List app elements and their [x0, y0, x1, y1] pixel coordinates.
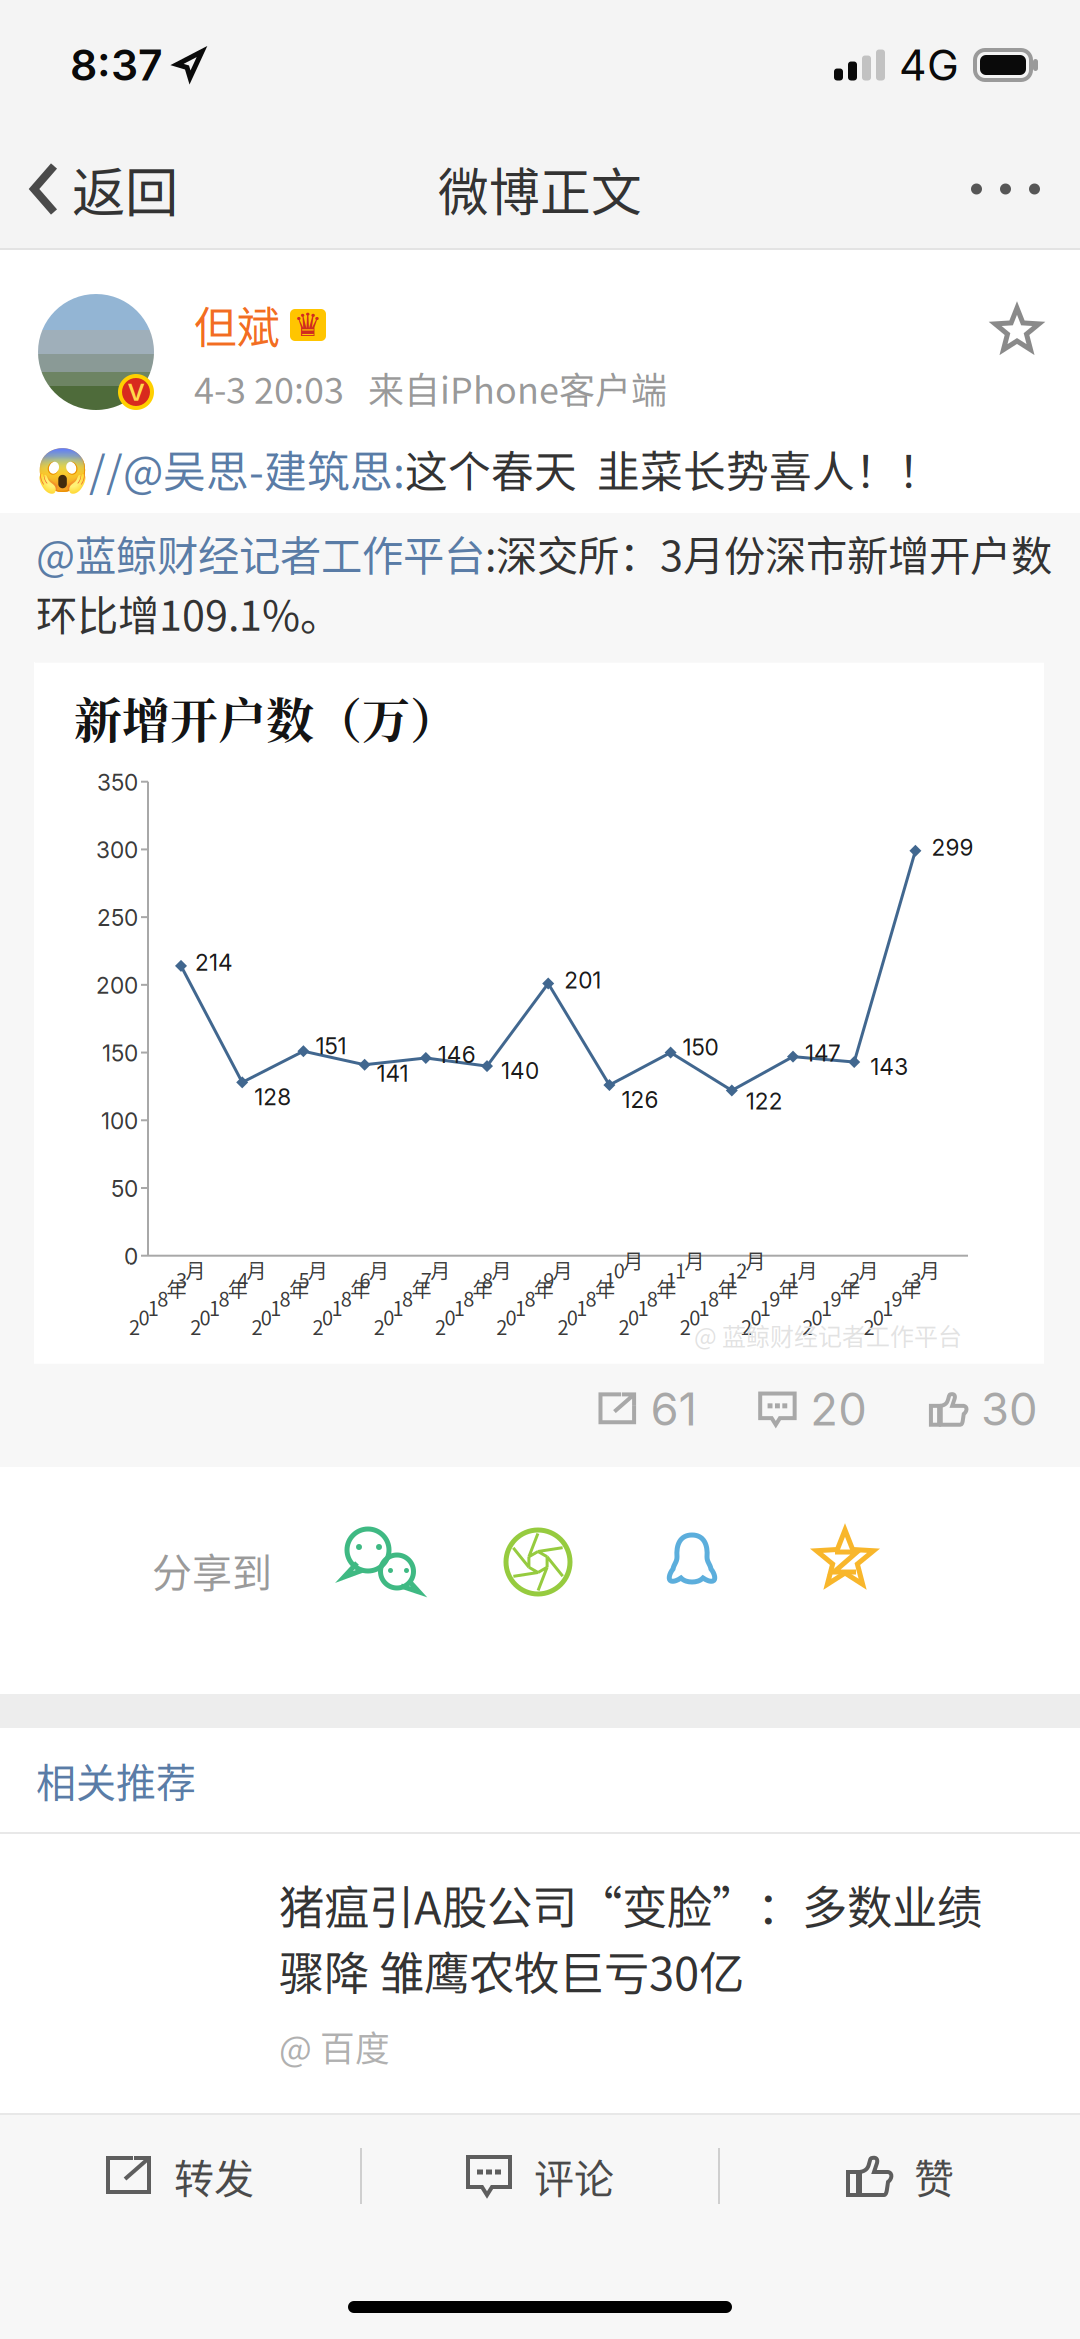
staticText: 4-3 20:03 来自iPhone客户端 — [194, 362, 667, 414]
staticText: 月 — [308, 1255, 328, 1284]
staticText: 2 — [863, 1312, 874, 1341]
staticText: 9 — [543, 1265, 554, 1294]
staticText: 1 — [637, 1293, 648, 1322]
button[interactable]: 返回 — [0, 130, 202, 248]
staticText: 2 — [849, 1265, 860, 1294]
button[interactable]: More — [941, 130, 1080, 248]
staticText: 8 — [341, 1283, 352, 1312]
staticText: 返回 — [72, 150, 178, 228]
staticText: 299 — [931, 834, 973, 861]
staticText: 0 — [567, 1302, 578, 1331]
staticText: 1 — [788, 1265, 799, 1294]
staticText: 新增开户数（万） — [74, 683, 458, 752]
staticText: 151 — [315, 1032, 346, 1060]
staticText: 0 — [506, 1302, 517, 1331]
staticText: 141 — [377, 1060, 409, 1087]
staticText: 2 — [129, 1312, 140, 1341]
staticText: 1 — [882, 1293, 893, 1322]
staticText: 4 — [237, 1265, 248, 1294]
staticText: 年 — [473, 1274, 493, 1303]
staticText: 评论 — [534, 2147, 614, 2205]
staticText: 0 — [614, 1255, 625, 1284]
staticText: 140 — [501, 1057, 539, 1084]
staticText: 214 — [195, 949, 233, 976]
staticText: 1 — [699, 1293, 710, 1322]
staticText: 147 — [805, 1040, 841, 1067]
staticText: 2 — [619, 1312, 630, 1341]
staticText: 月 — [859, 1255, 879, 1284]
button[interactable]: 30 — [875, 1370, 1046, 1449]
button[interactable]: Moments — [492, 1516, 584, 1608]
button[interactable]: 评论 — [362, 2116, 718, 2236]
staticText: 0 — [383, 1302, 394, 1331]
staticText: 年 — [289, 1274, 309, 1303]
staticText: 4G — [899, 39, 959, 91]
button[interactable]: Favorite — [970, 294, 1040, 378]
staticText: 0 — [689, 1302, 700, 1331]
staticText: 1 — [270, 1293, 281, 1322]
button[interactable]: 赞 — [720, 2116, 1080, 2236]
staticText: 😱//@吴思-建筑思:这个春天 韭菜长势喜人！！ — [36, 438, 941, 500]
staticText: 年 — [167, 1274, 187, 1303]
staticText: 1 — [209, 1293, 220, 1322]
staticText: 300 — [96, 836, 138, 864]
staticText: 年 — [901, 1274, 921, 1303]
staticText: 年 — [228, 1274, 248, 1303]
staticText: 月 — [369, 1255, 389, 1284]
staticText: 128 — [254, 1083, 291, 1111]
staticText: 年 — [534, 1274, 554, 1303]
staticText: 9 — [830, 1283, 841, 1312]
staticText: 1 — [393, 1293, 404, 1322]
staticText: 2 — [736, 1255, 747, 1284]
staticText: 9 — [769, 1283, 780, 1312]
staticText: 8 — [524, 1283, 535, 1312]
staticText: 月 — [553, 1255, 573, 1284]
button[interactable]: QZone — [801, 1516, 889, 1604]
staticText: 月 — [491, 1255, 511, 1284]
staticText: 分享到 — [152, 1541, 272, 1599]
button[interactable]: 猪瘟引A股公司“变脸”：多数业绩骤降 雏鹰农牧巨亏30亿 — [0, 1834, 1080, 2113]
staticText: 月 — [430, 1255, 450, 1284]
staticText: 年 — [656, 1274, 676, 1303]
staticText: 1 — [675, 1255, 686, 1284]
button[interactable]: 20 — [705, 1370, 875, 1449]
staticText: 3 — [910, 1265, 921, 1294]
staticText: 月 — [185, 1255, 205, 1284]
button[interactable]: WeChat — [329, 1513, 439, 1611]
staticText: 0 — [138, 1302, 149, 1331]
staticText: 1 — [576, 1293, 587, 1322]
staticText: 1 — [331, 1293, 342, 1322]
staticText: 100 — [101, 1107, 138, 1135]
button[interactable]: 61 — [591, 1370, 704, 1449]
staticText: 1 — [148, 1293, 159, 1322]
staticText: 150 — [683, 1034, 719, 1061]
button[interactable]: QQ — [651, 1517, 733, 1603]
staticText: 0 — [124, 1243, 138, 1270]
staticText: @蓝鲸财经记者工作平台:深交所：3月份深市新增开户数环比增109.1%。 — [36, 523, 1052, 643]
staticText: 月 — [920, 1255, 940, 1284]
staticText: 0 — [873, 1302, 884, 1331]
staticText: 0 — [750, 1302, 761, 1331]
staticText: 年 — [411, 1274, 431, 1303]
staticText: 30 — [981, 1382, 1038, 1437]
staticText: 2 — [496, 1312, 507, 1341]
staticText: 年 — [595, 1274, 615, 1303]
staticText: 250 — [97, 904, 138, 931]
staticText: 8 — [280, 1283, 291, 1312]
staticText: 2 — [374, 1312, 385, 1341]
staticText: 8 — [708, 1283, 719, 1312]
staticText: 122 — [746, 1087, 783, 1115]
staticText: 年 — [779, 1274, 799, 1303]
staticText: 61 — [651, 1382, 697, 1437]
staticText: 年 — [350, 1274, 370, 1303]
staticText: 年 — [840, 1274, 860, 1303]
staticText: 2 — [802, 1312, 813, 1341]
staticText: 2 — [557, 1312, 568, 1341]
staticText: 1 — [727, 1265, 738, 1294]
button[interactable]: 转发 — [0, 2116, 360, 2236]
staticText: 但斌 — [194, 294, 280, 356]
staticText: 8 — [586, 1283, 597, 1312]
staticText: 月 — [623, 1246, 643, 1275]
staticText: 20 — [810, 1382, 867, 1437]
staticText: 0 — [322, 1302, 333, 1331]
